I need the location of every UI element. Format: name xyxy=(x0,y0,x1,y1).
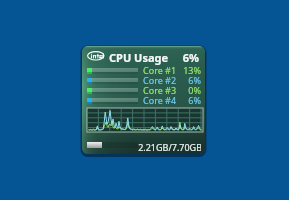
staticText: Core #3 xyxy=(143,84,177,96)
staticText: 0% xyxy=(162,84,201,96)
other: Intel xyxy=(87,51,105,61)
staticText: 13% xyxy=(162,64,201,76)
button[interactable]: Intel xyxy=(82,46,205,154)
staticText: 6% xyxy=(162,94,201,106)
staticText: CPU Usage xyxy=(109,50,169,65)
staticText: 2.21GB/7.70GB xyxy=(138,141,201,153)
staticText: Core #2 xyxy=(143,74,177,86)
staticText: Core #1 xyxy=(143,64,177,76)
staticText: 6% xyxy=(160,50,199,65)
staticText: Core #4 xyxy=(143,94,177,106)
staticText: 6% xyxy=(162,74,201,86)
